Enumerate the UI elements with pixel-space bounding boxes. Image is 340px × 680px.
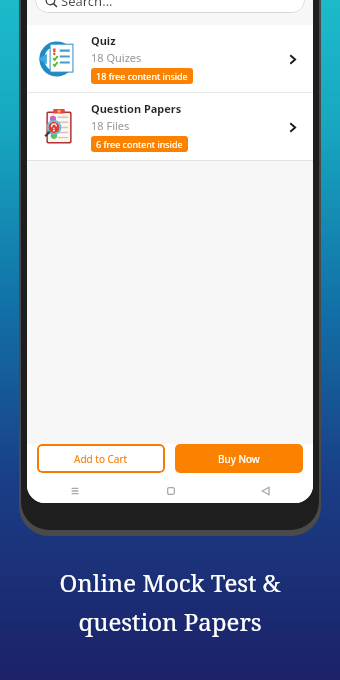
staticText: 6 free content inside [96, 138, 183, 150]
button[interactable]: Add to Cart [37, 444, 165, 473]
button[interactable]: Recent apps [27, 479, 123, 503]
button[interactable]: Home [123, 479, 218, 503]
button[interactable]: Search... [35, 0, 305, 13]
staticText: Search... [61, 0, 113, 10]
button[interactable]: Open Question Papers [281, 116, 303, 138]
staticText: Add to Cart [74, 452, 128, 466]
button[interactable]: Back [218, 479, 313, 503]
button[interactable]: Quiz [27, 25, 313, 92]
staticText: question Papers [78, 605, 262, 638]
staticText: Online Mock Test & [59, 566, 281, 599]
button[interactable]: Buy Now [175, 444, 303, 473]
staticText: 18 free content inside [96, 70, 188, 82]
staticText: Buy Now [218, 452, 260, 466]
staticText: Quiz [91, 33, 116, 48]
button[interactable]: Question Papers [27, 93, 313, 160]
staticText: 18 Quizes [91, 50, 142, 65]
staticText: Question Papers [91, 101, 182, 116]
staticText: 18 Files [91, 118, 130, 133]
button[interactable]: Open Quiz [281, 48, 303, 70]
